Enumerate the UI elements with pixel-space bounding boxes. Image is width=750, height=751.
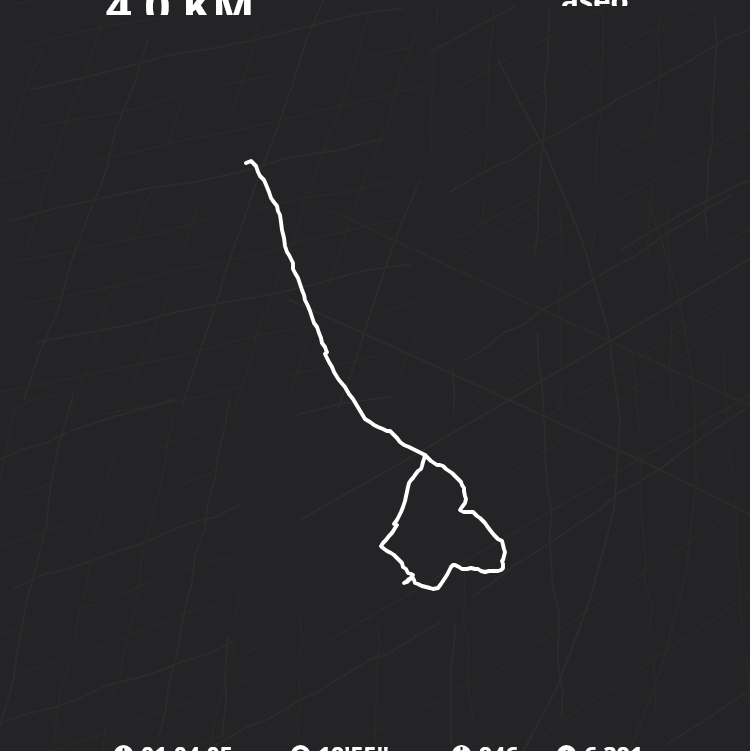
staticText: 19'55'' — [318, 739, 389, 751]
staticText: ' aseo — [546, 0, 629, 6]
staticText: 6.391 — [584, 739, 644, 751]
button[interactable]: Activity route map — [0, 0, 750, 751]
button[interactable]: Calories 946 — [452, 745, 520, 751]
staticText: 4,0 KM — [106, 0, 255, 15]
button[interactable]: Duration 01:04:05 — [114, 745, 239, 751]
staticText: 946 — [479, 739, 519, 751]
button[interactable]: Pace 19'55'' — [291, 745, 396, 751]
staticText: 01:04:05 — [141, 739, 233, 751]
button[interactable]: Steps 6.391 — [557, 745, 642, 751]
